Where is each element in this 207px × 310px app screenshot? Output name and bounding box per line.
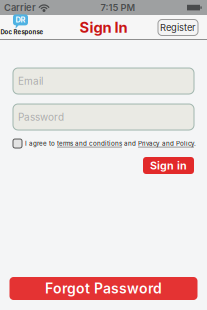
staticText: Email — [18, 75, 43, 87]
staticText: Password — [18, 111, 64, 123]
staticText: Doc Response — [0, 28, 43, 36]
staticText: 7:15 PM — [100, 2, 135, 13]
staticText: Forgot Password — [45, 280, 162, 297]
button[interactable]: Doc Response — [1, 15, 49, 40]
staticText: Carrier — [4, 2, 36, 13]
staticText: I agree to terms and conditions and Priv… — [25, 140, 196, 147]
button[interactable]: Forgot Password — [9, 277, 197, 300]
staticText: Sign In — [79, 19, 127, 36]
staticText: Register — [160, 22, 196, 33]
button[interactable]: I agree — [13, 139, 22, 148]
staticText: DR — [15, 15, 25, 24]
button[interactable]: Register — [158, 19, 198, 35]
button[interactable]: Sign in — [143, 157, 194, 174]
staticText: Sign in — [150, 159, 187, 172]
